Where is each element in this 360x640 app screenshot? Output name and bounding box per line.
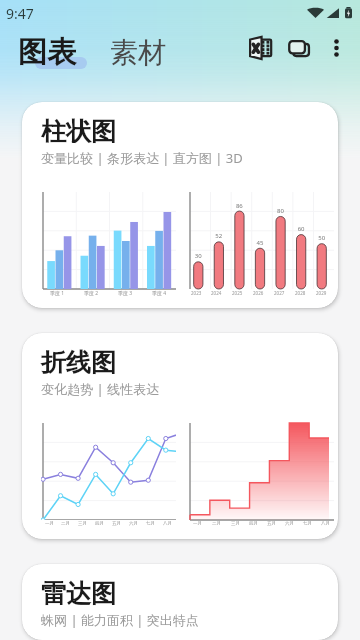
staticText: 八月	[321, 521, 330, 527]
staticText: 三月	[78, 521, 87, 527]
staticText: 一月	[45, 521, 54, 527]
staticText: 2023	[191, 290, 202, 296]
staticText: 素材	[110, 35, 166, 70]
staticText: 折线图	[41, 347, 116, 378]
staticText: 2028	[295, 290, 306, 296]
staticText: 2025	[232, 290, 243, 296]
staticText: 季度 1	[50, 290, 65, 297]
staticText: 变量比较 | 条形表达 | 直方图 | 3D	[41, 149, 243, 167]
staticText: 二月	[61, 521, 70, 527]
staticText: 四月	[249, 521, 258, 527]
staticText: 一月	[193, 521, 202, 527]
staticText: 五月	[112, 521, 121, 527]
staticText: 2027	[274, 290, 285, 296]
staticText: 六月	[129, 521, 138, 527]
staticText: 八月	[163, 521, 172, 527]
staticText: 2026	[253, 290, 264, 296]
staticText: 图表	[18, 34, 76, 71]
staticText: 蛛网 | 能力面积 | 突出特点	[41, 611, 199, 629]
button[interactable]: 柱状图	[22, 102, 338, 308]
staticText: 季度 4	[152, 290, 167, 297]
staticText: 雷达图	[41, 578, 116, 609]
staticText: 变化趋势 | 线性表达	[41, 380, 159, 398]
button[interactable]: 图表	[18, 34, 76, 71]
staticText: 七月	[303, 521, 312, 527]
staticText: 柱状图	[41, 116, 116, 147]
button[interactable]: 素材	[110, 35, 166, 70]
staticText: 季度 2	[84, 290, 99, 297]
staticText: 二月	[212, 521, 221, 527]
button[interactable]: 折线图	[22, 333, 338, 539]
staticText: 9:47	[6, 4, 34, 23]
button[interactable]: 雷达图	[22, 564, 338, 640]
button[interactable]: Copy	[283, 32, 315, 64]
staticText: 2024	[211, 290, 222, 296]
staticText: 五月	[267, 521, 276, 527]
staticText: 三月	[231, 521, 240, 527]
button[interactable]: More options	[321, 33, 351, 63]
staticText: 四月	[95, 521, 104, 527]
staticText: 季度 3	[118, 290, 133, 297]
staticText: 六月	[285, 521, 294, 527]
staticText: 七月	[146, 521, 155, 527]
button[interactable]: Export to Excel	[244, 32, 276, 64]
staticText: 2029	[316, 290, 327, 296]
